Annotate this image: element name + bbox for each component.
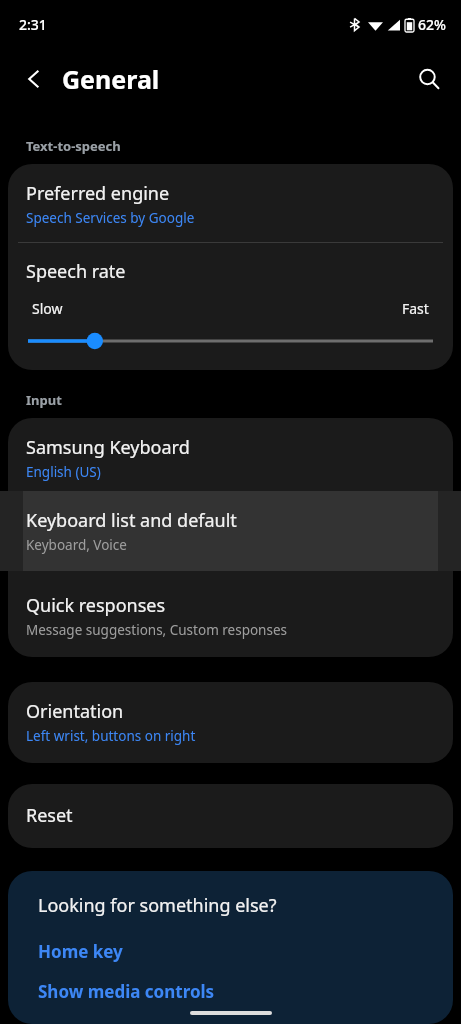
button[interactable]: Show media controls	[38, 980, 435, 1003]
button[interactable]: Orientation	[8, 682, 453, 763]
staticText: Keyboard list and default	[26, 508, 237, 533]
staticText: Input	[26, 391, 62, 409]
staticText: Text-to-speech	[26, 137, 121, 155]
staticText: Home key	[38, 940, 123, 963]
staticText: Preferred engine	[26, 181, 170, 206]
button[interactable]: Samsung Keyboard	[8, 418, 453, 497]
staticText: Message suggestions, Custom responses	[26, 621, 288, 639]
staticText: Keyboard, Voice	[26, 542, 127, 560]
staticText: Orientation	[26, 699, 124, 724]
staticText: Speech Services by Google	[26, 209, 195, 227]
staticText: Keyboard list and default	[26, 514, 237, 539]
button[interactable]: Preferred engine	[8, 164, 453, 242]
staticText: Left wrist, buttons on right	[26, 727, 196, 745]
button[interactable]: Speech rate	[8, 243, 453, 370]
button[interactable]: Keyboard list and default	[0, 491, 461, 554]
staticText: Slow	[32, 299, 63, 318]
staticText: Keyboard, Voice	[26, 536, 127, 554]
button[interactable]: Quick responses	[8, 576, 453, 657]
staticText: Samsung Keyboard	[26, 435, 190, 460]
staticText: English (US)	[26, 463, 101, 481]
button[interactable]: Back	[12, 57, 56, 101]
button[interactable]: Search	[407, 57, 451, 101]
staticText: Looking for something else?	[38, 893, 277, 918]
staticText: 62%	[418, 15, 446, 34]
button[interactable]: Home key	[38, 940, 435, 963]
staticText: Reset	[26, 803, 73, 828]
staticText: General	[62, 62, 160, 96]
button[interactable]: Keyboard list and default	[8, 497, 453, 576]
staticText: Fast	[402, 299, 429, 318]
button[interactable]	[26, 330, 435, 352]
button[interactable]: Reset	[8, 784, 453, 848]
staticText: Quick responses	[26, 593, 166, 618]
staticText: Show media controls	[38, 980, 215, 1003]
staticText: Speech rate	[26, 259, 126, 284]
staticText: 2:31	[19, 15, 47, 34]
